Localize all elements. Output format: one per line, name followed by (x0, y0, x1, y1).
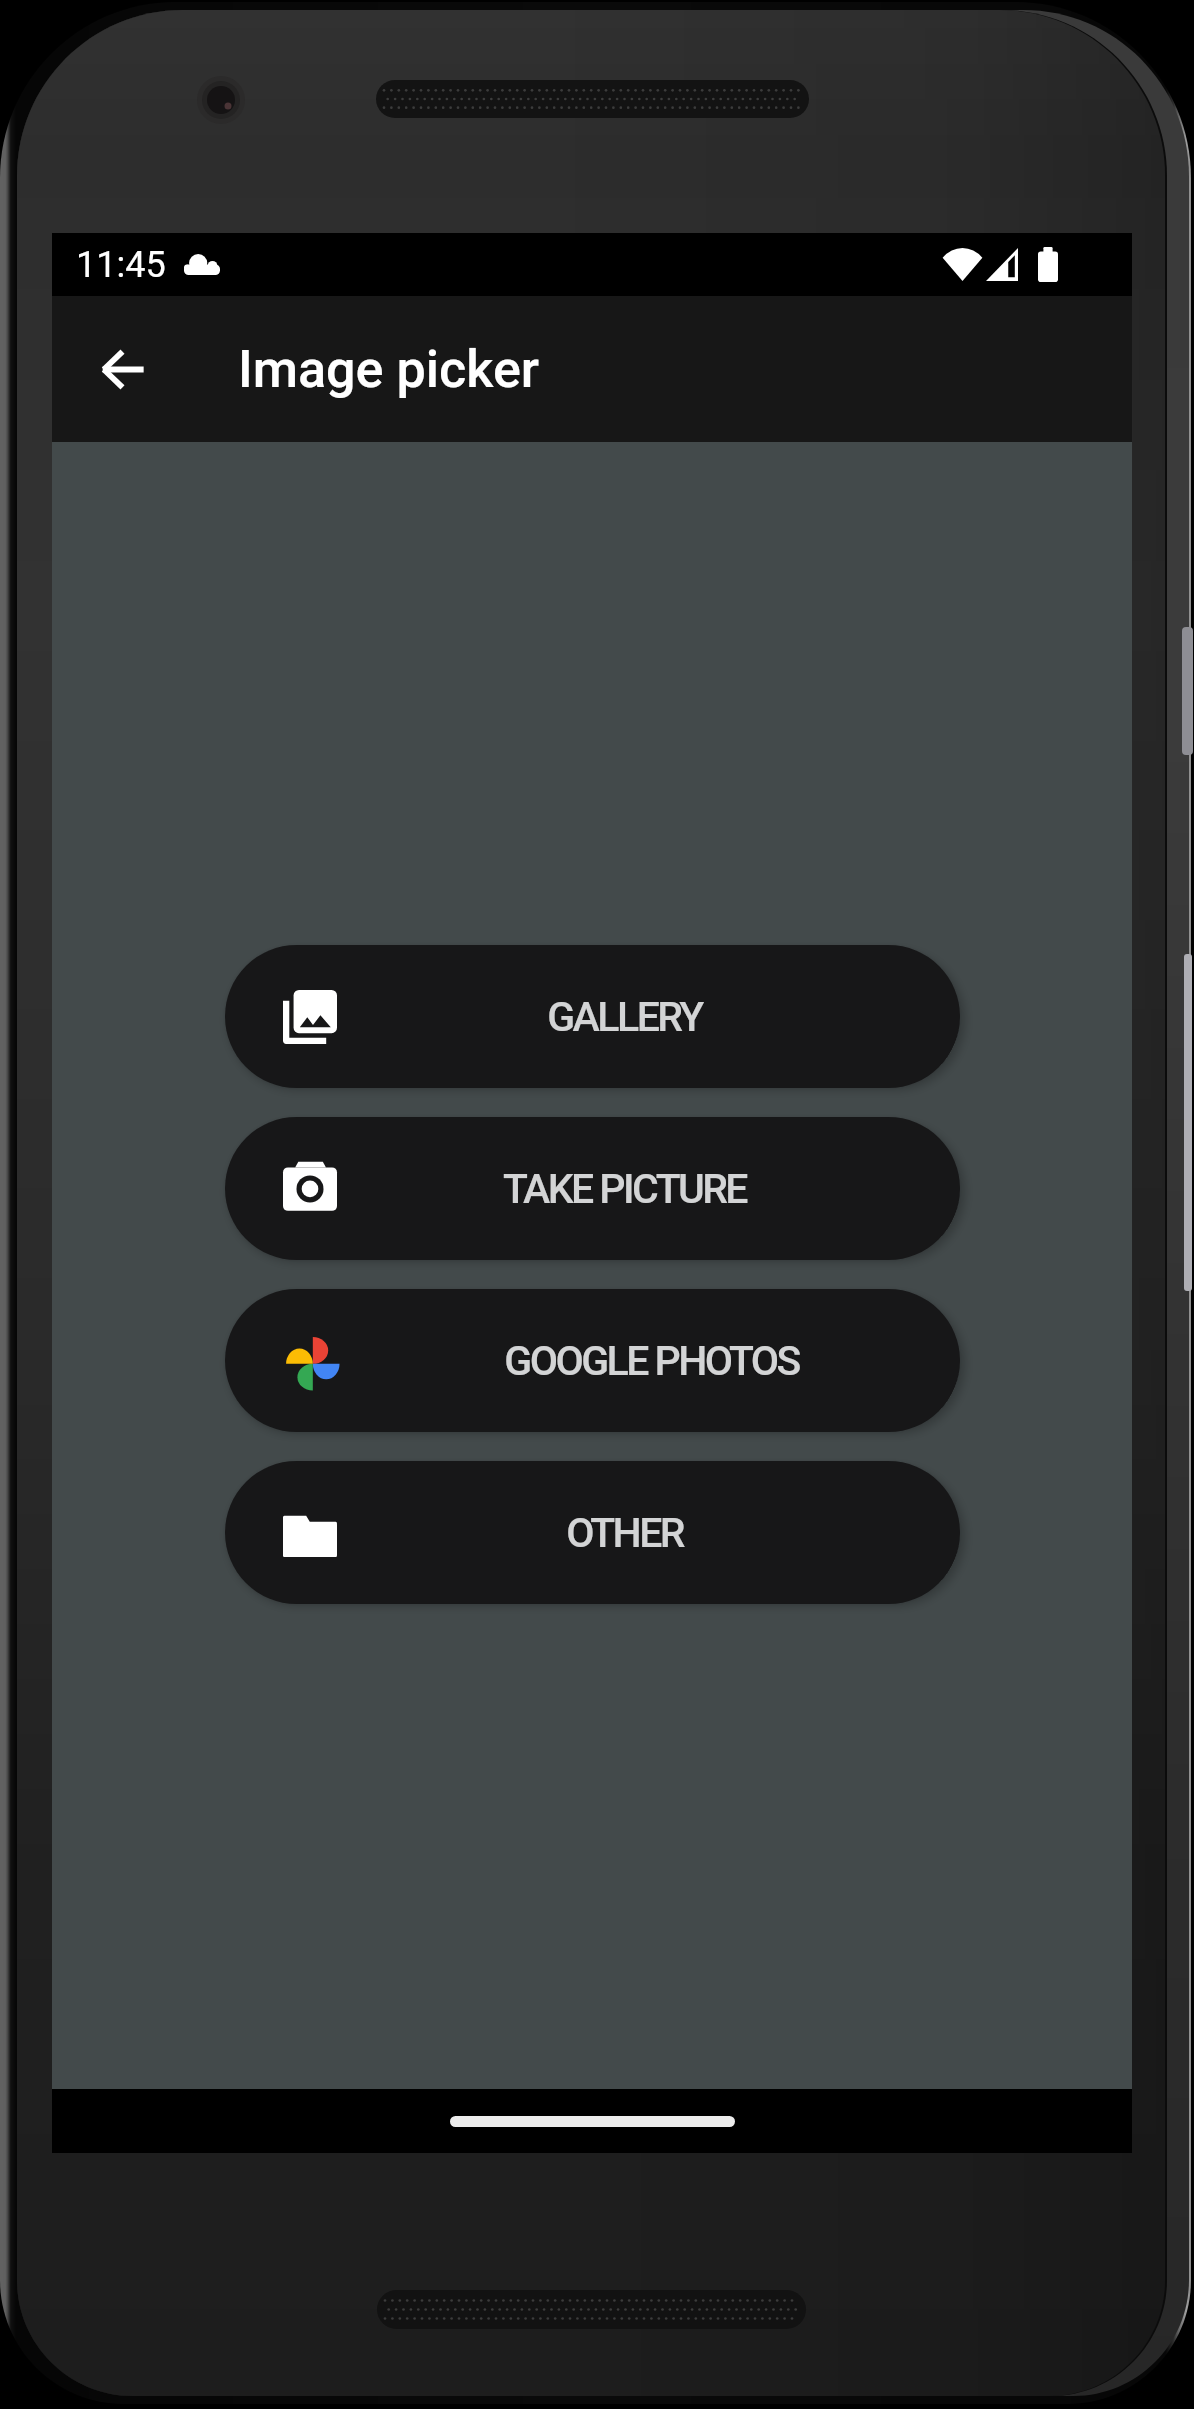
button[interactable]: Navigate up (80, 327, 164, 411)
button[interactable]: OTHER (225, 1461, 960, 1604)
button[interactable]: TAKE PICTURE (225, 1117, 960, 1260)
staticText: GOOGLE PHOTOS (504, 1337, 799, 1385)
staticText: Image picker (238, 339, 540, 400)
button[interactable]: GALLERY (225, 945, 960, 1088)
staticText: 11:45 (76, 244, 166, 286)
staticText: TAKE PICTURE (503, 1165, 746, 1213)
staticText: OTHER (566, 1509, 683, 1557)
staticText: GALLERY (547, 993, 702, 1041)
button[interactable]: GOOGLE PHOTOS (225, 1289, 960, 1432)
